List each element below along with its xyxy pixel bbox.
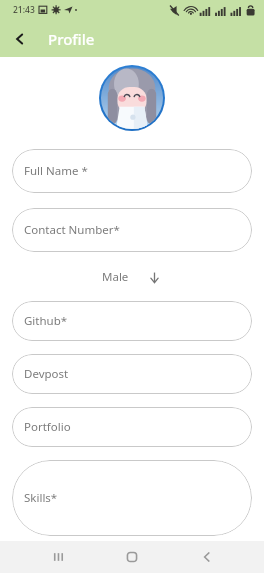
button[interactable]: Male bbox=[96, 265, 168, 289]
staticText: Contact Number* bbox=[24, 222, 120, 238]
staticText: Male bbox=[102, 269, 136, 285]
button[interactable]: Devpost bbox=[12, 354, 252, 394]
button[interactable]: Github* bbox=[12, 301, 252, 341]
staticText: Github* bbox=[24, 313, 68, 329]
button[interactable]: Contact Number* bbox=[12, 208, 252, 252]
button[interactable]: Back bbox=[6, 25, 34, 53]
button[interactable]: Full Name * bbox=[12, 149, 252, 193]
button[interactable]: Portfolio bbox=[12, 407, 252, 447]
staticText: 21:43 bbox=[13, 4, 35, 16]
button[interactable]: Recent apps bbox=[41, 541, 75, 573]
staticText: Skills* bbox=[24, 490, 58, 506]
other: Select gender bbox=[146, 269, 162, 285]
staticText: Full Name * bbox=[24, 163, 88, 179]
button[interactable]: Home bbox=[115, 541, 149, 573]
staticText: Profile bbox=[48, 29, 95, 49]
staticText: Portfolio bbox=[24, 419, 71, 435]
staticText: Devpost bbox=[24, 366, 69, 382]
button[interactable]: Skills* bbox=[12, 460, 252, 536]
button[interactable]: Back bbox=[190, 541, 224, 573]
